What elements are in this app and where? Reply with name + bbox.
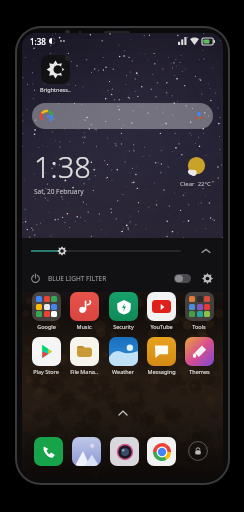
button[interactable]: Brightness.. xyxy=(34,55,76,93)
staticText: Security xyxy=(113,323,134,330)
button[interactable]: Themes xyxy=(181,337,217,375)
button[interactable]: YouTube xyxy=(143,292,179,330)
staticText: Messaging xyxy=(147,368,176,375)
staticText: Themes xyxy=(189,368,210,375)
button[interactable]: Open app drawer xyxy=(116,408,130,418)
button[interactable]: Lock xyxy=(183,436,213,466)
staticText: Play Store xyxy=(33,368,59,375)
staticText: YouTube xyxy=(150,323,173,330)
staticText: Brightness.. xyxy=(40,86,71,93)
button[interactable]: Blue light filter toggle xyxy=(174,274,191,283)
staticText: BLUE LIGHT FILTER xyxy=(48,274,107,283)
staticText: 1:38 xyxy=(34,147,91,186)
staticText: Google xyxy=(37,323,56,330)
staticText: Sat, 20 February xyxy=(34,187,84,196)
button[interactable]: Phone xyxy=(32,435,64,467)
button[interactable]: Chrome xyxy=(145,435,177,467)
button[interactable]: File Mana.. xyxy=(66,337,102,375)
button[interactable]: Tools xyxy=(181,292,217,330)
staticText: Clear 22°C xyxy=(180,180,211,188)
button[interactable]: Music xyxy=(66,292,102,330)
button[interactable]: Messaging xyxy=(143,337,179,375)
button[interactable]: Google xyxy=(28,292,64,330)
button[interactable]: Collapse xyxy=(198,243,214,259)
button[interactable]: Gallery xyxy=(70,435,102,467)
button[interactable]: BLUE LIGHT FILTER xyxy=(22,264,223,292)
button[interactable]: Weather xyxy=(105,337,141,375)
staticText: Tools xyxy=(192,323,206,330)
button[interactable]: Camera xyxy=(108,435,140,467)
button[interactable]: Play Store xyxy=(28,337,64,375)
staticText: Weather xyxy=(112,368,134,375)
staticText: Music xyxy=(76,323,92,330)
staticText: 1:38 xyxy=(30,36,46,47)
button[interactable]: Settings xyxy=(200,271,214,285)
staticText: File Mana.. xyxy=(70,368,98,375)
button[interactable] xyxy=(32,103,213,129)
button[interactable]: Security xyxy=(105,292,141,330)
